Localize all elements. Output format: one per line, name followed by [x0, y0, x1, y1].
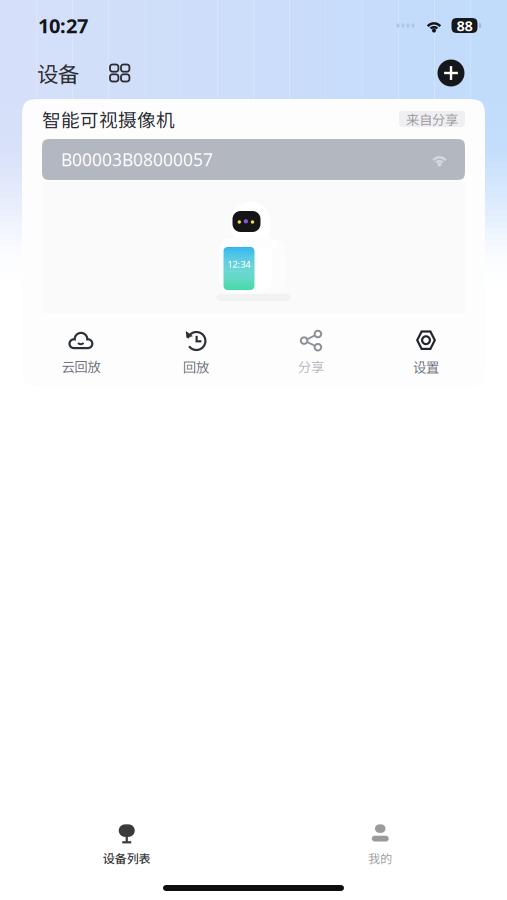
staticText: 分享 [298, 356, 324, 376]
button[interactable]: 设备 [37, 52, 79, 94]
staticText: B00003B08000057 [61, 148, 213, 171]
staticText: 我的 [368, 849, 392, 867]
button[interactable]: 设备列表 [0, 826, 253, 865]
staticText: 设备 [37, 58, 79, 88]
staticText: 10:27 [38, 12, 88, 39]
button[interactable]: 我的 [253, 826, 507, 865]
staticText: 12:34 [227, 258, 250, 270]
button[interactable]: 设置 [368, 329, 483, 376]
staticText: 88 [456, 16, 472, 35]
button[interactable]: 云回放 [23, 329, 138, 376]
button[interactable]: 分享 [253, 329, 368, 376]
button[interactable]: Add device [429, 51, 473, 95]
staticText: 设置 [413, 357, 439, 376]
button[interactable]: 回放 [138, 329, 253, 376]
staticText: 智能可视摄像机 [42, 105, 175, 132]
staticText: 来自分享 [406, 109, 458, 129]
button[interactable]: Grid view [79, 55, 129, 90]
staticText: 云回放 [61, 356, 100, 376]
staticText: 设备列表 [103, 849, 151, 867]
staticText: 回放 [183, 357, 209, 376]
